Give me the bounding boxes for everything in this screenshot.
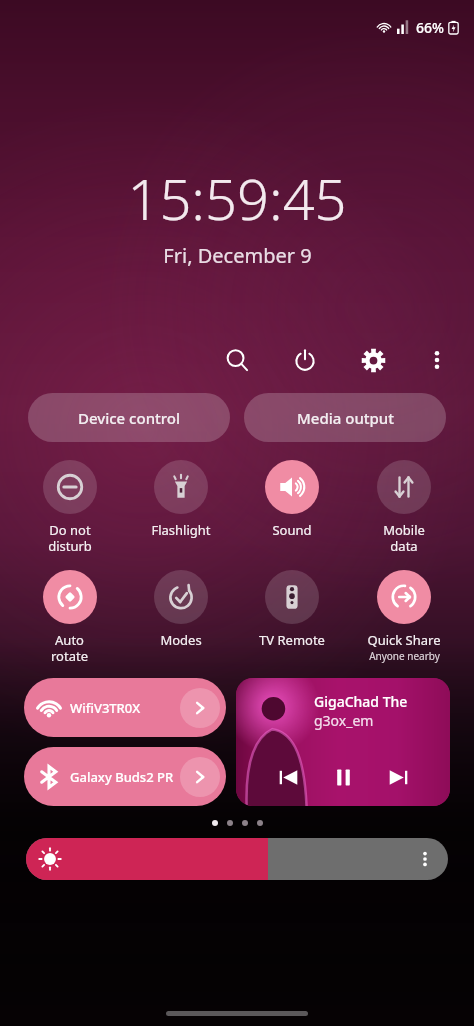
- button[interactable]: Media output: [244, 393, 446, 442]
- button[interactable]: Settings: [354, 341, 392, 379]
- staticText: WifiV3TR0X: [70, 699, 180, 717]
- staticText: Flashlight: [151, 521, 211, 539]
- button[interactable]: Power: [286, 341, 324, 379]
- staticText: 66%: [416, 18, 444, 37]
- staticText: Sound: [272, 521, 312, 539]
- staticText: Modes: [160, 631, 202, 649]
- button[interactable]: Galaxy Buds2 PR: [24, 747, 226, 806]
- staticText: Auto rotate: [51, 631, 88, 664]
- button[interactable]: Pause: [326, 760, 360, 794]
- staticText: TV Remote: [259, 631, 325, 649]
- button[interactable]: More options: [418, 341, 456, 379]
- button[interactable]: Brightness settings: [410, 844, 440, 874]
- staticText: Anyone nearby: [369, 649, 440, 663]
- button[interactable]: Device control: [28, 393, 230, 442]
- staticText: 15:59:45: [127, 160, 347, 236]
- staticText: Galaxy Buds2 PR: [70, 768, 180, 786]
- button[interactable]: Do not disturb: [14, 458, 125, 556]
- staticText: Mobile data: [383, 521, 425, 554]
- button[interactable]: Modes: [125, 568, 236, 651]
- button[interactable]: Quick Share: [348, 568, 460, 665]
- staticText: Quick Share: [367, 631, 441, 649]
- button[interactable]: Brightness: [26, 838, 448, 880]
- button[interactable]: Previous: [271, 760, 305, 794]
- button[interactable]: TV Remote: [236, 568, 348, 651]
- button[interactable]: Search: [218, 341, 256, 379]
- button[interactable]: Next: [381, 760, 415, 794]
- staticText: Do not disturb: [48, 521, 92, 554]
- staticText: g3ox_em: [314, 711, 374, 730]
- staticText: GigaChad The: [314, 692, 408, 711]
- button[interactable]: Sound: [236, 458, 348, 541]
- button[interactable]: Mobile data: [348, 458, 460, 556]
- button[interactable]: Flashlight: [125, 458, 236, 541]
- button[interactable]: Auto rotate: [14, 568, 125, 666]
- staticText: Fri, December 9: [163, 242, 312, 269]
- other: Open Galaxy Buds2 PR: [180, 757, 220, 797]
- other: Open WifiV3TR0X: [180, 688, 220, 728]
- button[interactable]: WifiV3TR0X: [24, 678, 226, 737]
- staticText: Device control: [78, 408, 181, 428]
- button[interactable]: GigaChad The: [236, 678, 450, 806]
- staticText: Media output: [297, 408, 394, 428]
